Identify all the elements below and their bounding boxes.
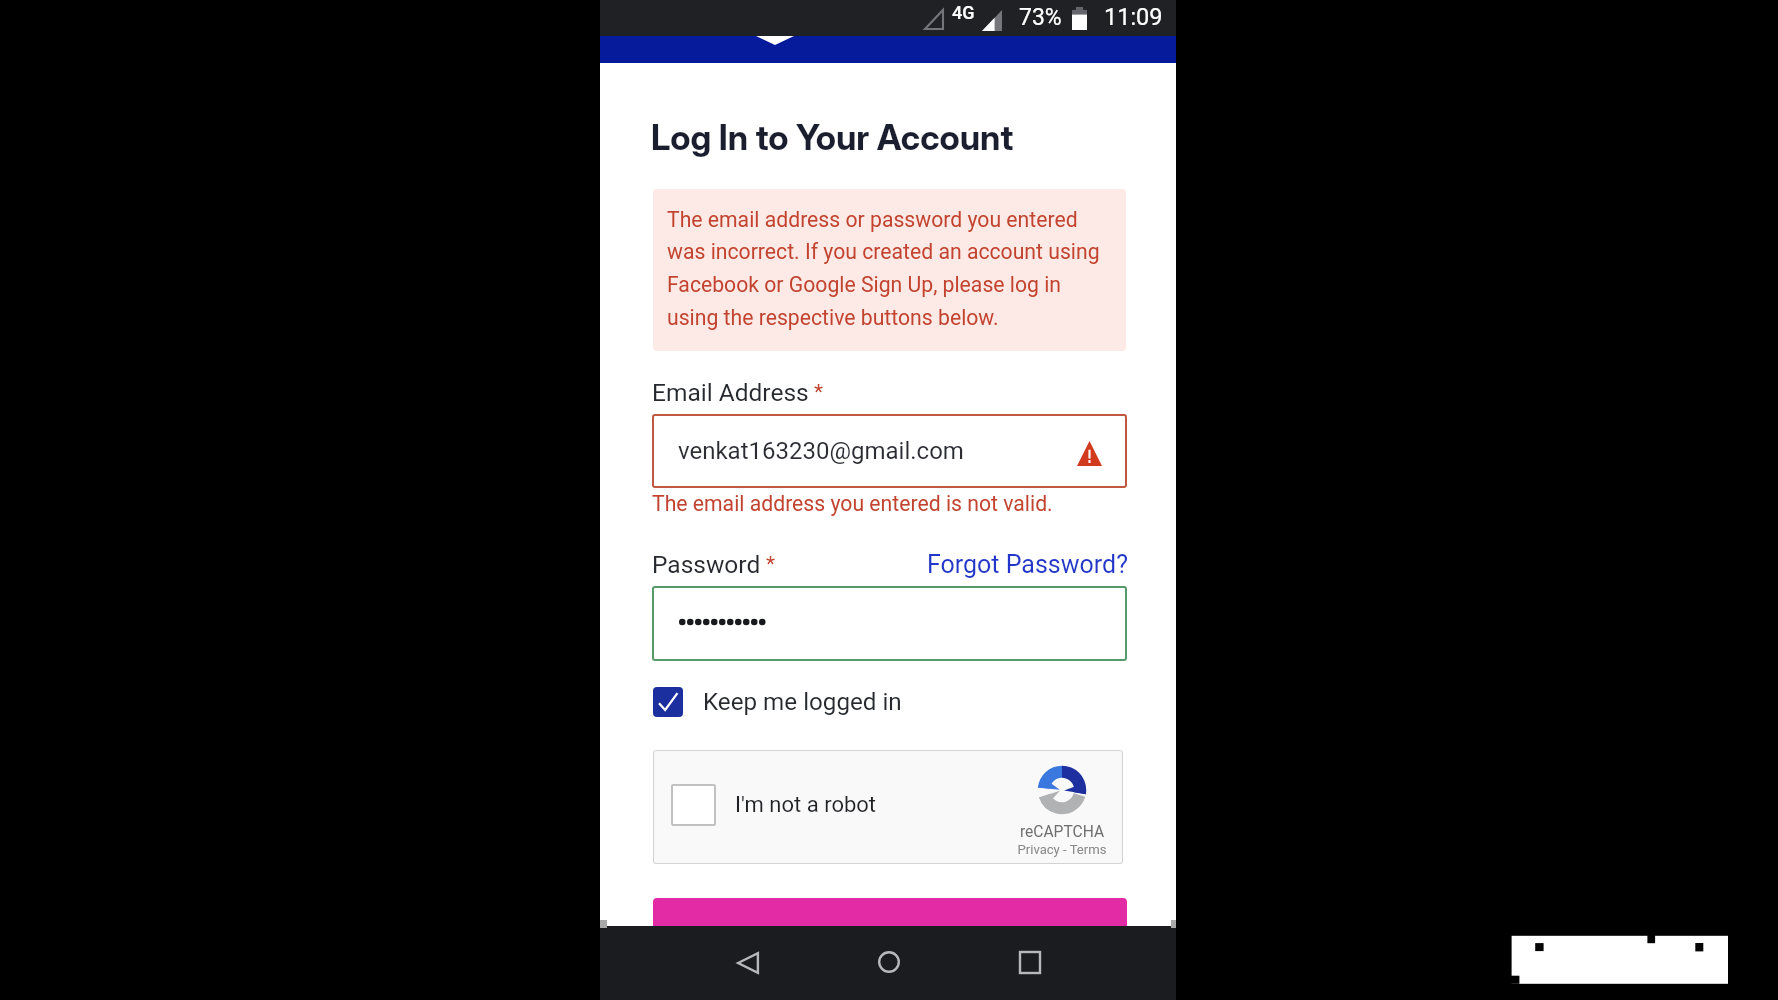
staticText: The email address you entered is not val… bbox=[652, 491, 1053, 516]
staticText: I'm not a robot bbox=[735, 792, 877, 818]
button[interactable]: venkat163230@gmail.com bbox=[652, 414, 1127, 488]
button[interactable]: I'm not a robot checkbox bbox=[653, 750, 1123, 864]
button[interactable]: Forgot Password? bbox=[927, 548, 1128, 577]
button[interactable]: Keep me logged in bbox=[650, 683, 910, 721]
staticText: Password bbox=[652, 550, 761, 579]
staticText: Keep me logged in bbox=[703, 688, 902, 716]
staticText: * bbox=[814, 380, 824, 405]
staticText: Forgot Password? bbox=[927, 550, 1128, 579]
staticText: Privacy - Terms bbox=[1006, 842, 1118, 857]
staticText: venkat163230@gmail.com bbox=[678, 437, 964, 465]
staticText: reCAPTCHA bbox=[1006, 823, 1118, 841]
staticText: 11:09 bbox=[1104, 3, 1163, 31]
staticText: * bbox=[766, 552, 776, 577]
staticText: Log In to Your Account bbox=[651, 116, 1014, 158]
button[interactable]: Home bbox=[856, 930, 920, 994]
button[interactable]: Recent apps bbox=[998, 930, 1062, 994]
button[interactable]: Back bbox=[720, 930, 784, 994]
button[interactable]: I'm not a robot checkbox bbox=[671, 784, 716, 826]
staticText: 4G bbox=[952, 2, 975, 23]
staticText: The email address or password you entere… bbox=[667, 207, 1109, 330]
button[interactable] bbox=[653, 898, 1127, 958]
button[interactable] bbox=[652, 586, 1127, 661]
staticText: 73% bbox=[1019, 4, 1062, 31]
staticText: Email Address bbox=[652, 378, 809, 407]
